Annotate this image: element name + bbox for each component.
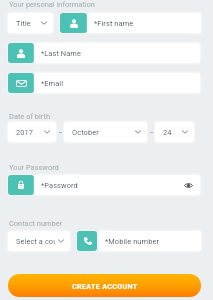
staticText: CREATE ACCOUNT (72, 282, 138, 290)
staticText: October (72, 128, 99, 137)
staticText: 24 (163, 128, 172, 137)
button[interactable]: *Mobile number (99, 231, 201, 251)
button[interactable]: Select a country (8, 231, 70, 251)
button[interactable]: First name (60, 13, 87, 33)
button[interactable]: *Password (35, 175, 200, 195)
button[interactable]: Password (8, 175, 34, 195)
button[interactable]: *Last Name (35, 43, 200, 63)
staticText: Your personal information (9, 0, 95, 9)
button[interactable]: Show password (182, 179, 195, 192)
button[interactable]: Last name (8, 43, 34, 63)
staticText: *Email (41, 79, 64, 88)
staticText: *Last Name (41, 49, 81, 58)
button[interactable]: 24 (155, 122, 194, 142)
staticText: Date of birth (9, 112, 51, 121)
button[interactable]: 2017 (8, 122, 56, 142)
button[interactable]: Email (8, 73, 34, 93)
button[interactable]: *Email (35, 73, 200, 93)
staticText: Select a country (16, 237, 55, 246)
button[interactable]: CREATE ACCOUNT (8, 274, 201, 297)
staticText: Your Password (9, 163, 59, 172)
button[interactable]: October (64, 122, 147, 142)
staticText: *Password (41, 181, 78, 190)
staticText: *First name (94, 19, 134, 28)
button[interactable]: Title (8, 13, 53, 33)
staticText: Contact number (9, 219, 63, 228)
staticText: *Mobile number (105, 237, 160, 246)
staticText: Title (16, 19, 31, 28)
staticText: 2017 (16, 128, 34, 137)
button[interactable]: Call (77, 231, 97, 251)
button[interactable]: *First name (88, 13, 201, 33)
